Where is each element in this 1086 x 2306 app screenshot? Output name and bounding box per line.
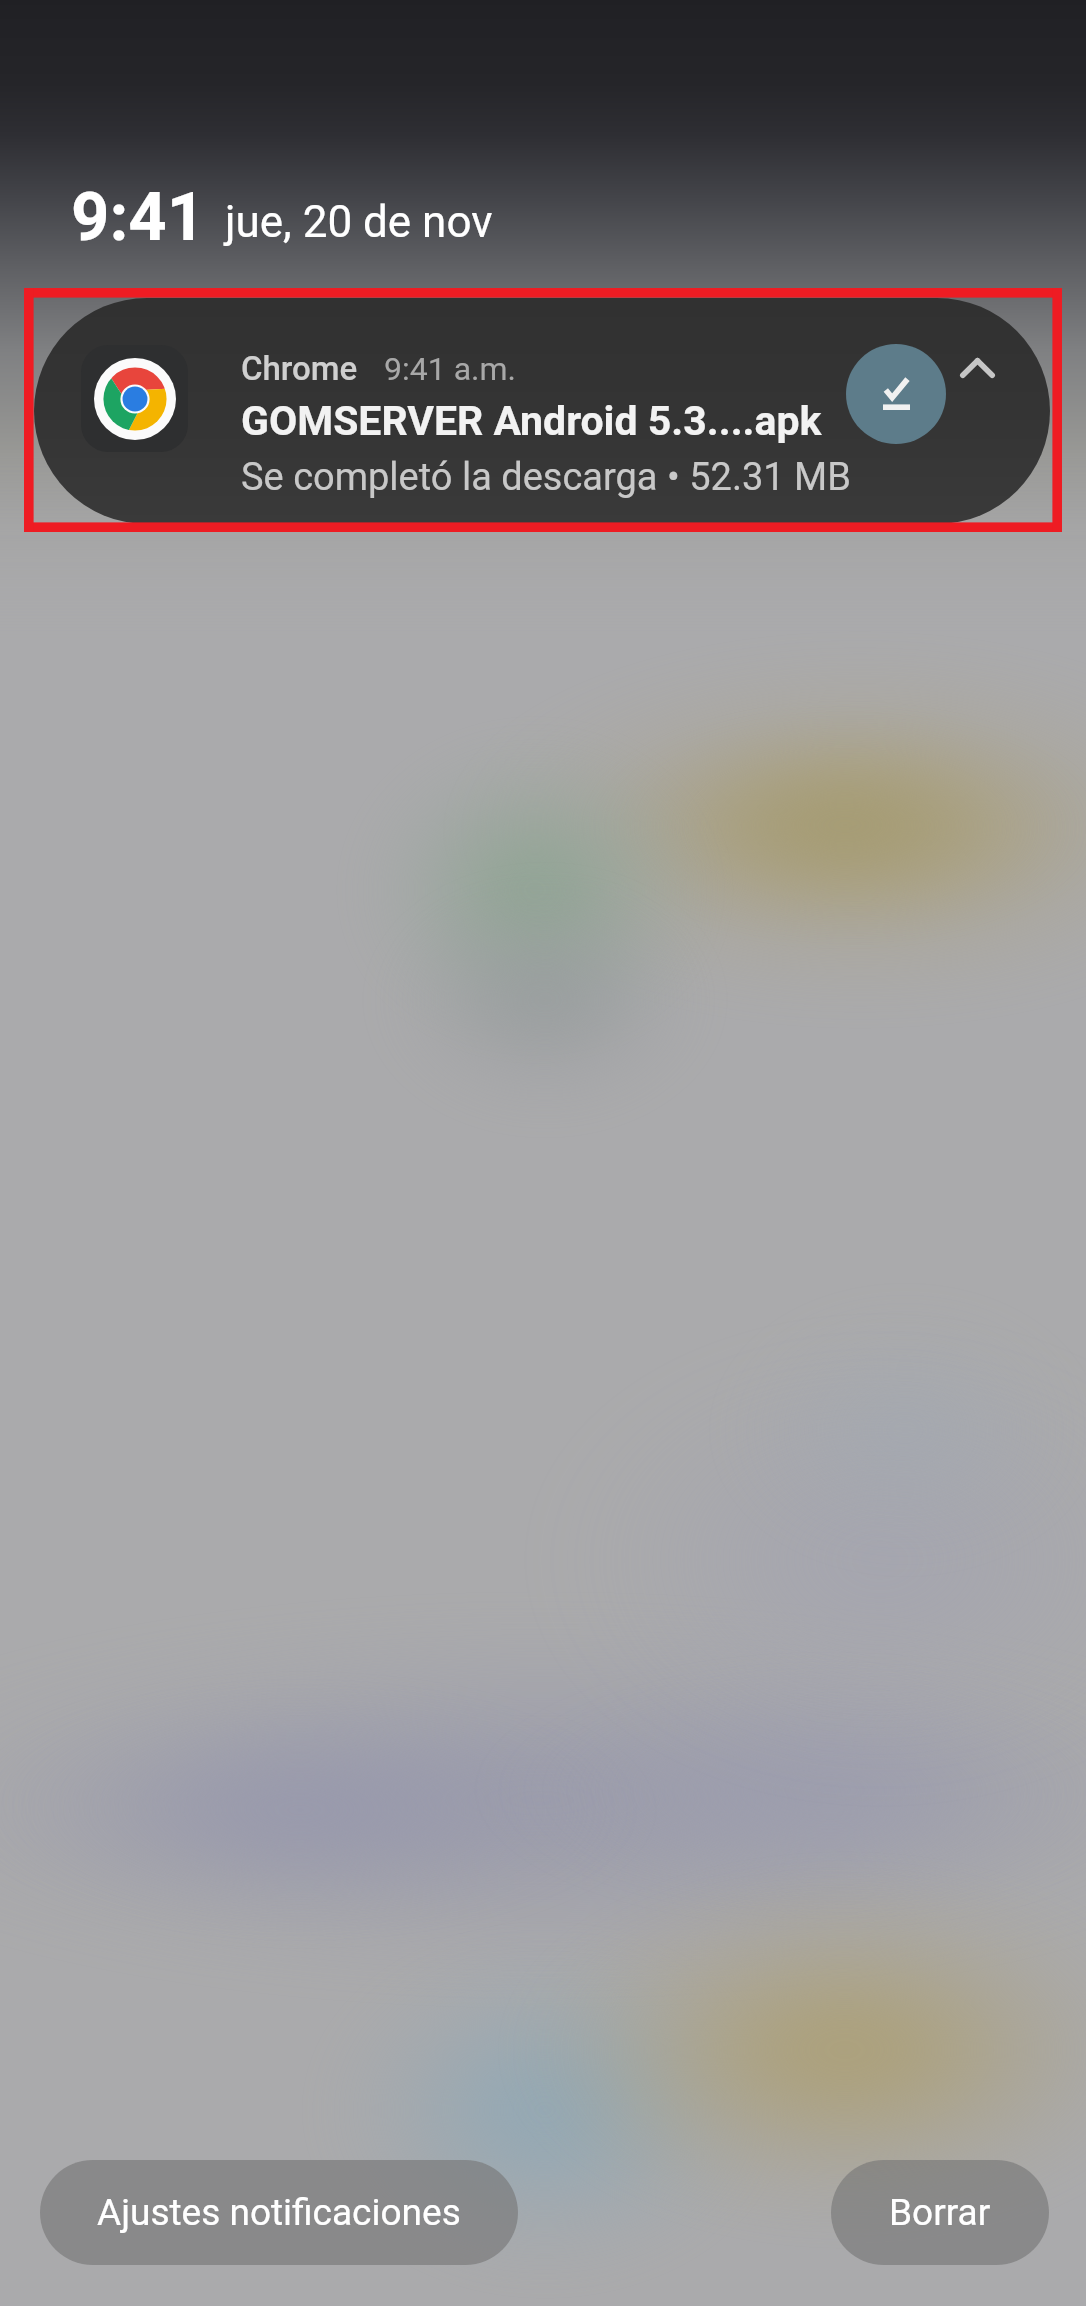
button[interactable]: Chrome — [34, 298, 1050, 524]
staticText: Ajustes notificaciones — [97, 2191, 461, 2234]
staticText: Borrar — [889, 2191, 991, 2234]
button[interactable]: Expandir — [943, 334, 1011, 402]
button[interactable]: Ajustes notificaciones — [40, 2160, 518, 2265]
button[interactable]: Borrar — [831, 2160, 1049, 2265]
staticText: jue, 20 de nov — [225, 196, 493, 248]
staticText: 9:41 — [71, 178, 206, 257]
staticText: 9:41 a.m. — [384, 350, 516, 388]
staticText: Chrome — [241, 349, 358, 388]
staticText: Se completó la descarga • 52.31 MB — [241, 455, 851, 500]
button[interactable]: Descarga completada — [846, 344, 946, 444]
staticText: GOMSERVER Android 5.3....apk — [241, 397, 822, 445]
